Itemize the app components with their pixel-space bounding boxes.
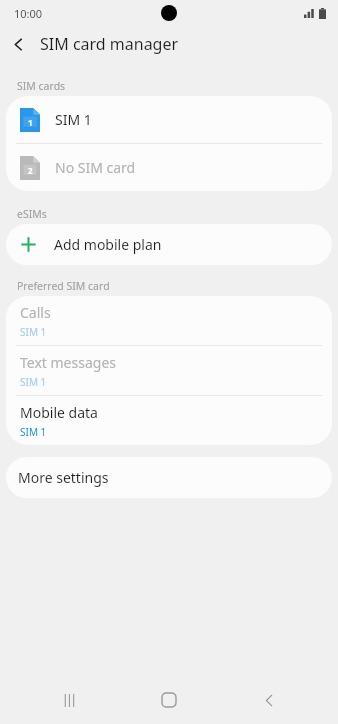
staticText: eSIMs	[17, 207, 47, 221]
staticText: 2	[28, 165, 33, 176]
button[interactable]: Home	[139, 676, 199, 724]
button[interactable]: Back	[0, 26, 36, 62]
staticText: SIM 1	[20, 375, 47, 389]
button[interactable]: 1	[6, 96, 332, 143]
button[interactable]: More settings	[6, 457, 332, 498]
staticText: SIM card manager	[40, 33, 179, 55]
staticText: 10:00	[14, 6, 43, 21]
button[interactable]: Mobile data	[6, 396, 332, 445]
staticText: More settings	[18, 468, 109, 487]
staticText: Preferred SIM card	[17, 279, 110, 293]
staticText: No SIM card	[55, 158, 136, 177]
staticText: SIM 1	[20, 325, 47, 339]
button[interactable]: Back	[239, 676, 299, 724]
staticText: Calls	[20, 303, 51, 322]
button[interactable]: Recents	[40, 676, 100, 724]
staticText: SIM cards	[17, 79, 66, 93]
button[interactable]: Add mobile plan	[6, 224, 332, 265]
staticText: 1	[28, 117, 33, 128]
staticText: Text messages	[20, 353, 116, 372]
staticText: SIM 1	[20, 425, 47, 439]
staticText: Add mobile plan	[54, 235, 162, 254]
staticText: SIM 1	[55, 110, 92, 129]
button[interactable]: Calls	[6, 296, 332, 345]
staticText: Mobile data	[20, 403, 98, 422]
button[interactable]: 2	[6, 144, 332, 191]
button[interactable]: Text messages	[6, 346, 332, 395]
